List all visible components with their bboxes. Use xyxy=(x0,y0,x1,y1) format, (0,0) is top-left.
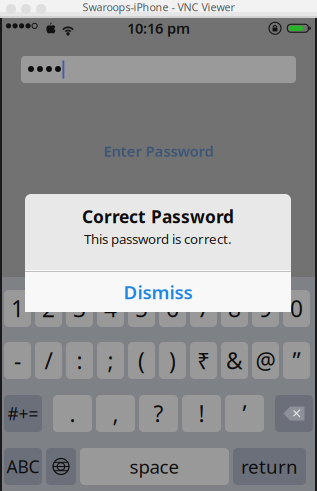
button[interactable]: 4 xyxy=(97,290,124,327)
button[interactable]: return xyxy=(233,448,306,485)
button[interactable]: . xyxy=(53,395,92,432)
staticText: 1 xyxy=(11,293,24,323)
button[interactable]: 7 xyxy=(190,290,217,327)
button[interactable]: Next keyboard xyxy=(46,448,76,485)
staticText: @ xyxy=(255,345,275,375)
button[interactable]: ” xyxy=(283,342,310,379)
staticText: 8 xyxy=(228,293,241,323)
staticText: . xyxy=(69,398,75,428)
staticText: , xyxy=(112,398,118,428)
staticText: Correct Password xyxy=(82,205,234,228)
button[interactable]: : xyxy=(66,342,93,379)
button[interactable]: 3 xyxy=(66,290,93,327)
staticText: ( xyxy=(138,345,145,375)
staticText: 4 xyxy=(104,293,117,323)
button[interactable]: ( xyxy=(128,342,155,379)
staticText: 9 xyxy=(259,293,272,323)
button[interactable]: Delete xyxy=(275,395,313,432)
staticText: - xyxy=(14,345,21,375)
button[interactable]: , xyxy=(96,395,135,432)
button[interactable]: ! xyxy=(182,395,221,432)
button[interactable]: - xyxy=(4,342,31,379)
staticText: 3 xyxy=(73,293,86,323)
button[interactable]: 2 xyxy=(35,290,62,327)
staticText: Enter Password xyxy=(103,141,213,161)
staticText: This password is correct. xyxy=(84,230,232,248)
staticText: / xyxy=(44,345,52,375)
button[interactable]: ; xyxy=(97,342,124,379)
staticText: Dismiss xyxy=(123,280,192,304)
staticText: & xyxy=(226,345,243,375)
staticText: ’ xyxy=(242,398,246,428)
button[interactable]: 6 xyxy=(159,290,186,327)
button[interactable]: ? xyxy=(139,395,178,432)
button[interactable]: #+= xyxy=(4,395,42,432)
button[interactable]: 9 xyxy=(252,290,279,327)
staticText: space xyxy=(129,454,179,479)
staticText: #+= xyxy=(7,402,38,425)
button[interactable]: 1 xyxy=(4,290,31,327)
button[interactable]: ₹ xyxy=(190,342,217,379)
staticText: ABC xyxy=(6,455,39,478)
button[interactable]: 5 xyxy=(128,290,155,327)
staticText: 5 xyxy=(135,293,148,323)
button[interactable]: Dismiss xyxy=(25,272,291,312)
staticText: Swaroops-iPhone - VNC Viewer xyxy=(82,0,234,14)
staticText: 0 xyxy=(290,293,303,323)
button[interactable]: 0 xyxy=(283,290,310,327)
staticText: 10:16 pm xyxy=(127,18,190,38)
button[interactable]: & xyxy=(221,342,248,379)
staticText: ) xyxy=(169,345,176,375)
button[interactable]: / xyxy=(35,342,62,379)
button[interactable]: space xyxy=(80,448,229,485)
button[interactable]: 8 xyxy=(221,290,248,327)
button[interactable]: ’ xyxy=(225,395,264,432)
staticText: ? xyxy=(153,398,163,428)
button[interactable]: Password field xyxy=(21,56,296,83)
button[interactable]: Enter Password xyxy=(2,141,315,161)
staticText: ! xyxy=(198,398,204,428)
button[interactable]: ABC xyxy=(4,448,42,485)
staticText: ” xyxy=(292,345,300,375)
staticText: ₹ xyxy=(197,345,210,375)
button[interactable]: @ xyxy=(252,342,279,379)
button[interactable]: ) xyxy=(159,342,186,379)
staticText: : xyxy=(76,345,82,375)
staticText: 6 xyxy=(166,293,179,323)
staticText: return xyxy=(241,454,298,479)
staticText: 2 xyxy=(42,293,55,323)
staticText: 7 xyxy=(197,293,210,323)
staticText: ; xyxy=(107,345,113,375)
